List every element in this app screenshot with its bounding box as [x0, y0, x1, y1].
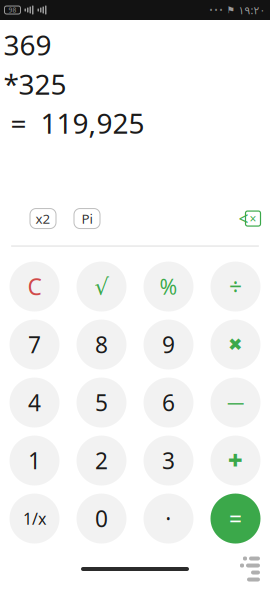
- staticText: • • •: [209, 5, 222, 15]
- button[interactable]: 7: [1, 319, 68, 369]
- staticText: ۱۹:۲۰: [238, 3, 265, 17]
- button[interactable]: %: [135, 261, 202, 311]
- button[interactable]: 8: [68, 319, 135, 369]
- staticText: C: [27, 271, 41, 302]
- button[interactable]: Backspace: [230, 203, 270, 233]
- button[interactable]: 2: [68, 435, 135, 485]
- staticText: 1: [28, 445, 41, 476]
- staticText: ✚: [228, 451, 243, 470]
- staticText: √: [94, 274, 108, 299]
- staticText: = 119,925: [3, 104, 144, 142]
- staticText: 5: [95, 387, 108, 418]
- staticText: 6: [162, 387, 175, 418]
- staticText: 3: [162, 445, 175, 476]
- staticText: •: [166, 511, 171, 526]
- staticText: *325: [3, 65, 66, 102]
- button[interactable]: 4: [1, 377, 68, 427]
- staticText: 0: [95, 503, 108, 534]
- button[interactable]: 6: [135, 377, 202, 427]
- staticText: =: [229, 503, 242, 534]
- button[interactable]: =: [202, 493, 269, 543]
- button[interactable]: ✚: [202, 435, 269, 485]
- button[interactable]: 1: [1, 435, 68, 485]
- button[interactable]: •: [135, 493, 202, 543]
- button[interactable]: 1/x: [1, 493, 68, 543]
- button[interactable]: Pi: [74, 208, 100, 228]
- staticText: 9: [162, 329, 175, 360]
- staticText: ⚑: [226, 5, 234, 15]
- staticText: —: [227, 391, 244, 414]
- staticText: <: [238, 207, 248, 230]
- staticText: 1/x: [23, 508, 46, 529]
- button[interactable]: 0: [68, 493, 135, 543]
- staticText: 98: [8, 6, 16, 14]
- staticText: Pi: [81, 210, 92, 227]
- staticText: ✖: [228, 335, 243, 354]
- button[interactable]: C: [1, 261, 68, 311]
- staticText: %: [159, 272, 177, 301]
- staticText: 7: [28, 329, 41, 360]
- button[interactable]: 9: [135, 319, 202, 369]
- button[interactable]: ✖: [202, 319, 269, 369]
- staticText: x2: [35, 210, 50, 227]
- button[interactable]: 3: [135, 435, 202, 485]
- staticText: 8: [95, 329, 108, 360]
- button[interactable]: —: [202, 377, 269, 427]
- staticText: ÷: [229, 271, 242, 302]
- button[interactable]: 5: [68, 377, 135, 427]
- staticText: ×: [249, 211, 256, 226]
- staticText: 4: [28, 387, 41, 418]
- button[interactable]: √: [68, 261, 135, 311]
- button[interactable]: x2: [30, 208, 56, 228]
- staticText: 369: [3, 26, 51, 63]
- staticText: 2: [95, 445, 108, 476]
- button[interactable]: ÷: [202, 261, 269, 311]
